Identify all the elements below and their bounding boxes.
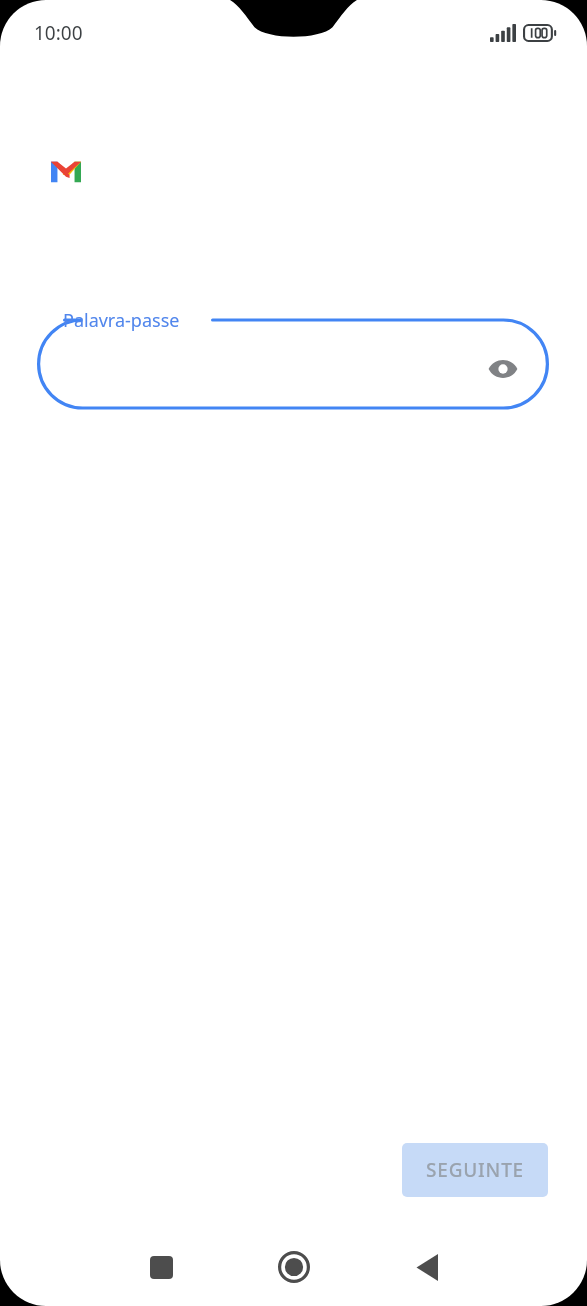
button[interactable]: Home <box>264 1237 324 1297</box>
staticText: 10:00 <box>34 20 83 46</box>
button[interactable]: Back <box>396 1237 456 1297</box>
button[interactable]: Gmail <box>43 149 89 195</box>
button[interactable]: SEGUINTE <box>402 1143 548 1197</box>
staticText: Palavra-passe <box>63 308 180 333</box>
staticText: SEGUINTE <box>426 1157 524 1183</box>
button[interactable]: Recent apps <box>131 1237 191 1297</box>
button[interactable]: Show password <box>479 345 527 393</box>
